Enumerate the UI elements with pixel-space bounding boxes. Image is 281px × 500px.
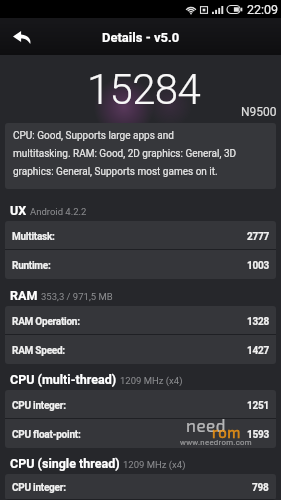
- staticText: 798: [252, 482, 269, 494]
- staticText: 353,3 / 971,5 MB: [41, 291, 113, 302]
- staticText: 1427: [247, 345, 269, 357]
- staticText: Details - v5.0: [102, 30, 180, 45]
- staticText: CPU integer:: [12, 482, 66, 494]
- staticText: CPU integer:: [12, 400, 66, 412]
- staticText: CPU float-point:: [12, 429, 81, 441]
- staticText: 1251: [247, 400, 269, 412]
- staticText: 1593: [247, 429, 269, 441]
- staticText: N9500: [241, 105, 277, 119]
- staticText: 1209 MHz (x4): [120, 375, 183, 386]
- staticText: 15284: [87, 65, 200, 114]
- button[interactable]: RAM Operation:: [5, 306, 276, 335]
- button[interactable]: Runtime:: [5, 250, 276, 279]
- staticText: Multitask:: [12, 231, 55, 243]
- staticText: 1328: [247, 316, 269, 328]
- staticText: Runtime:: [12, 260, 51, 272]
- staticText: graphics: General, Supports most games o…: [13, 166, 218, 178]
- button[interactable]: CPU integer:: [5, 390, 276, 419]
- button[interactable]: CPU integer:: [5, 474, 276, 500]
- staticText: RAM Operation:: [12, 316, 80, 328]
- staticText: 22:09: [247, 2, 279, 17]
- staticText: need: [186, 415, 226, 435]
- button[interactable]: CPU float-point:: [5, 419, 276, 448]
- button[interactable]: Back: [0, 18, 42, 55]
- staticText: CPU: Good, Supports large apps and: [13, 130, 174, 142]
- staticText: rom: [212, 423, 241, 441]
- button[interactable]: CPU: Good, Supports large apps and: [5, 123, 276, 189]
- staticText: UX: [10, 203, 27, 218]
- staticText: RAM Speed:: [12, 345, 65, 357]
- staticText: 2777: [247, 231, 269, 243]
- button[interactable]: Multitask:: [5, 221, 276, 250]
- staticText: 1209 MHz (x4): [123, 459, 186, 470]
- staticText: www.needrom.com: [180, 438, 252, 447]
- staticText: CPU (multi-thread): [10, 372, 117, 387]
- staticText: RAM: [10, 288, 38, 303]
- staticText: CPU (single thread): [10, 456, 120, 471]
- button[interactable]: RAM Speed:: [5, 335, 276, 364]
- staticText: 1003: [247, 260, 269, 272]
- staticText: Android 4.2.2: [30, 206, 87, 217]
- staticText: multitasking. RAM: Good, 2D graphics: Ge…: [13, 148, 237, 160]
